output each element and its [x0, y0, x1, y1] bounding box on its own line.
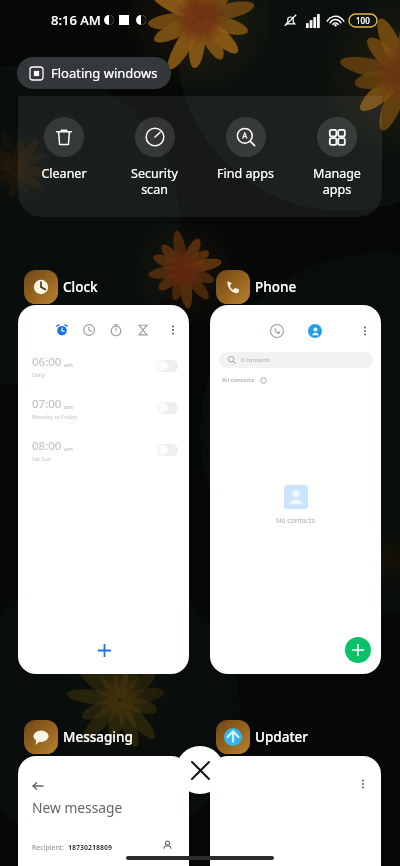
staticText: 100	[356, 15, 370, 26]
staticText: am	[64, 445, 73, 453]
button[interactable]: Add alarm	[90, 636, 118, 664]
button[interactable]: 06:00	[18, 305, 189, 674]
staticText: New message	[32, 798, 123, 817]
staticText: am	[64, 361, 73, 369]
staticText: am	[64, 403, 73, 411]
staticText: Find apps	[217, 165, 274, 182]
button[interactable]: Back	[18, 756, 189, 866]
button[interactable]: Security scan	[109, 117, 200, 197]
staticText: Messaging	[63, 728, 133, 746]
staticText: 0 contacts	[241, 356, 270, 364]
staticText: Floating windows	[51, 64, 158, 82]
button[interactable]: 06:00	[18, 345, 189, 387]
staticText: 08:00	[32, 438, 62, 454]
button[interactable]: Cleaner	[18, 117, 109, 182]
staticText: Cleaner	[41, 165, 87, 182]
staticText: Security scan	[131, 165, 178, 197]
staticText: 06:00	[32, 354, 62, 370]
staticText: Manage apps	[313, 165, 361, 197]
button[interactable]: Find apps	[200, 117, 291, 182]
button[interactable]: Manage apps	[291, 117, 382, 197]
staticText: Phone	[255, 278, 297, 296]
staticText: All contacts	[222, 376, 255, 384]
button[interactable]: Messaging	[24, 720, 133, 754]
button[interactable]: Close all	[176, 746, 224, 794]
button[interactable]: 0 contacts	[210, 305, 381, 674]
button[interactable]: Phone	[216, 270, 297, 304]
staticText: 18730218809	[68, 843, 113, 853]
other: Back	[32, 780, 44, 792]
staticText: 07:00	[32, 396, 62, 412]
staticText: No contacts	[276, 516, 315, 526]
button[interactable]: 0 contacts	[219, 352, 373, 368]
staticText: Updater	[255, 728, 309, 746]
staticText: Daily	[32, 371, 45, 378]
button[interactable]: Clock	[24, 270, 98, 304]
button[interactable]: 08:00	[18, 429, 189, 471]
button[interactable]: Floating windows	[17, 57, 171, 89]
staticText: Clock	[63, 278, 98, 296]
button[interactable]: More options	[210, 756, 381, 866]
button[interactable]: New contact	[345, 637, 371, 663]
staticText: Sat Sun	[32, 455, 52, 462]
other: More options	[357, 778, 369, 790]
button[interactable]: 07:00	[18, 387, 189, 429]
staticText: Recipient:	[32, 843, 65, 853]
staticText: Monday to Friday	[32, 413, 77, 420]
button[interactable]: Updater	[216, 720, 309, 754]
staticText: 8:16 AM	[51, 11, 101, 29]
